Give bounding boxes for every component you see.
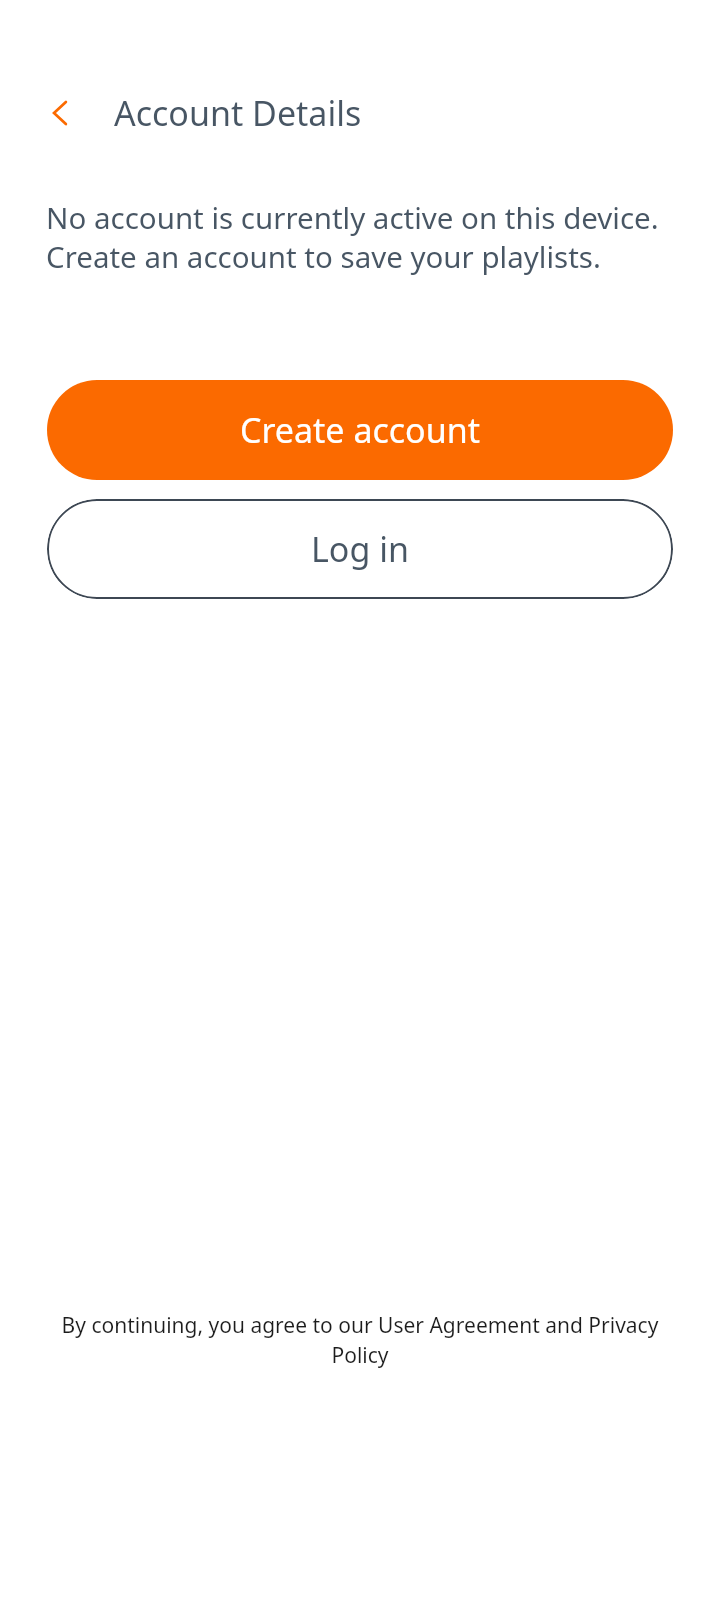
button[interactable]: Log in (47, 499, 673, 599)
staticText: No account is currently active on this d… (46, 197, 676, 277)
staticText: Create account (240, 407, 480, 453)
staticText: Account Details (114, 90, 362, 136)
button[interactable]: Create account (47, 380, 673, 480)
button[interactable]: Back (37, 87, 89, 139)
staticText: Log in (311, 526, 409, 572)
staticText: By continuing, you agree to our User Agr… (60, 1311, 660, 1369)
